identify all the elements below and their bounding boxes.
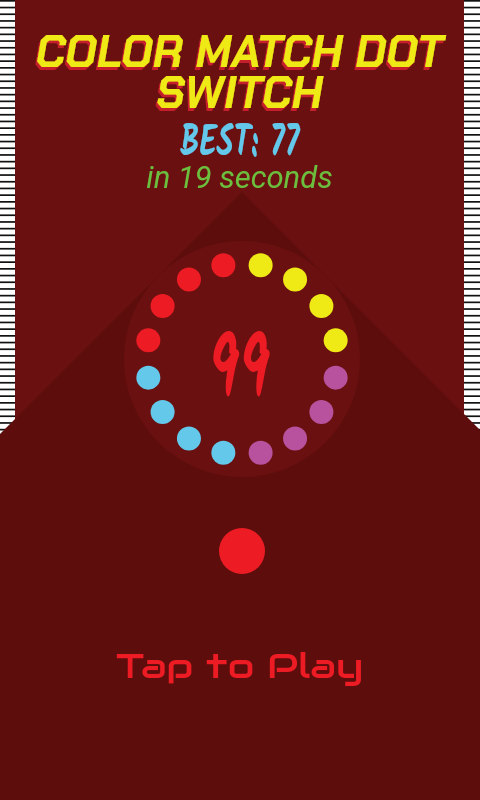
staticText: 99 [209,305,271,442]
staticText: in 19 seconds [15,159,464,195]
staticText: SWITCH [15,63,464,121]
staticText: SWITCH [13,66,462,124]
staticText: BEST: 77 [180,110,300,179]
staticText: COLOR MATCH DOT [13,25,462,83]
button[interactable]: Tap to Play [116,645,364,687]
staticText: COLOR MATCH DOT [15,22,464,80]
staticText: Tap to Play [116,645,364,687]
